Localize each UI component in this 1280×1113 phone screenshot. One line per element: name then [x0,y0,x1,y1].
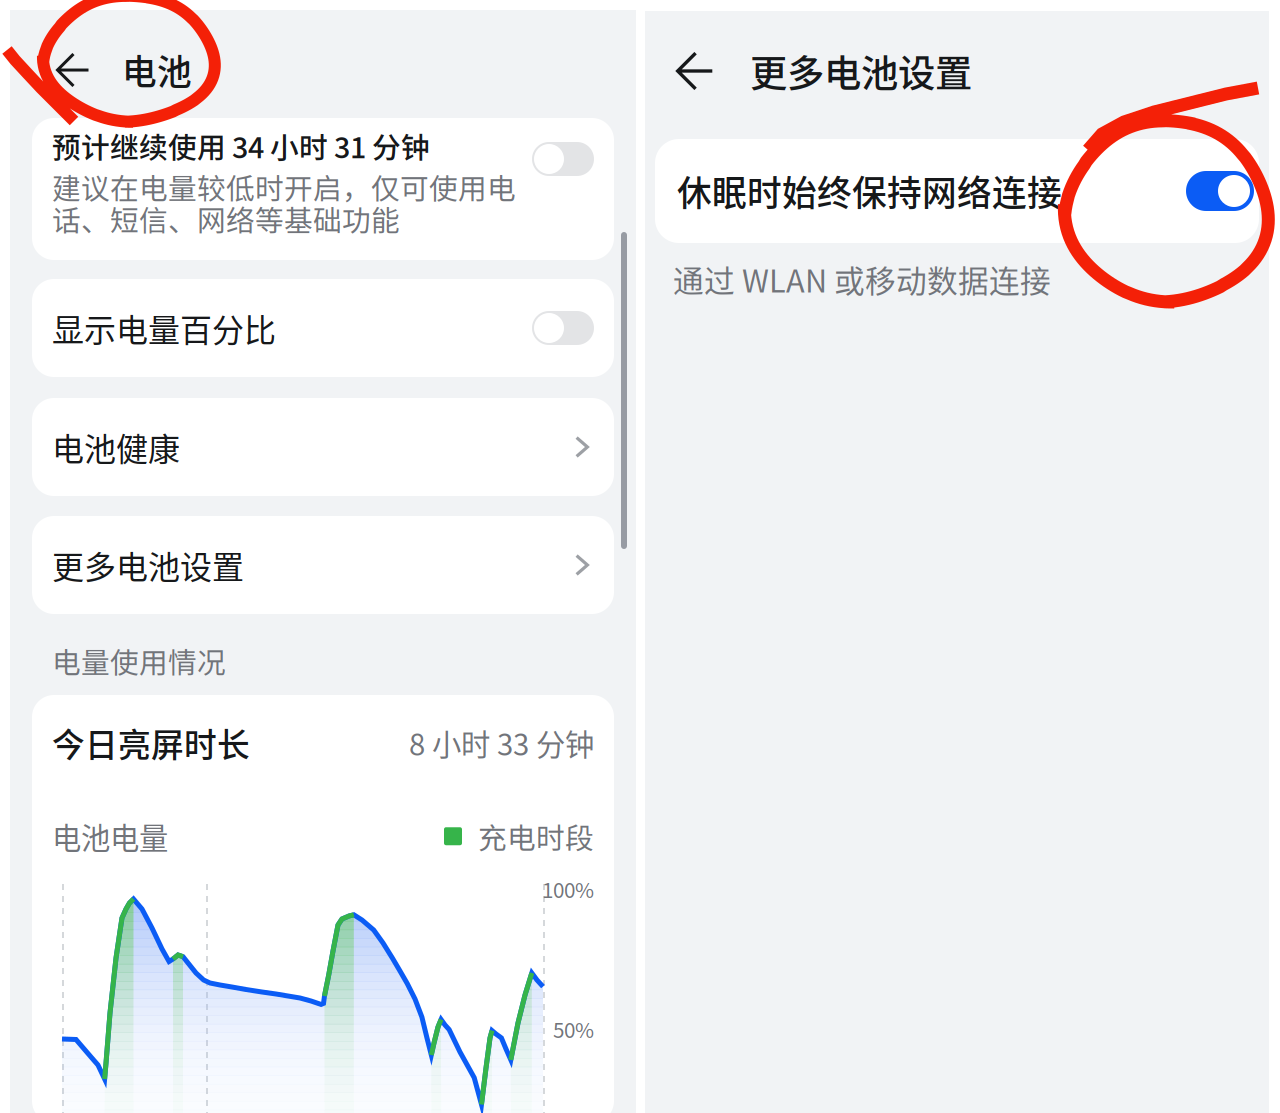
staticText: 预计继续使用 34 小时 31 分钟 [52,125,430,166]
staticText: 话、短信、网络等基础功能 [52,198,400,239]
staticText: 显示电量百分比 [52,305,276,351]
button[interactable]: 电池 [10,32,636,108]
staticText: 电池 [122,45,192,95]
staticText: 50% [553,1014,594,1044]
staticText: 今日亮屏时长 [52,719,250,766]
button[interactable]: 休眠时始终保持网络连接 [655,139,1259,243]
button[interactable]: 更多电池设置 [32,516,614,614]
button[interactable]: 电池健康 [32,398,614,496]
staticText: 电池健康 [52,424,180,470]
staticText: 通过 WLAN 或移动数据连接 [673,257,1051,301]
staticText: 更多电池设置 [52,542,244,588]
staticText: 充电时段 [478,815,594,857]
staticText: 更多电池设置 [750,44,972,98]
button[interactable]: 预计继续使用 34 小时 31 分钟 [32,118,614,260]
staticText: 建议在电量较低时开启，仅可使用电 [52,166,516,207]
button[interactable]: 更多电池设置 [645,31,1269,111]
staticText: 100% [542,874,594,904]
staticText: 电量使用情况 [52,640,226,681]
button[interactable]: 显示电量百分比 [32,279,614,377]
staticText: 8 小时 33 分钟 [409,721,594,764]
staticText: 休眠时始终保持网络连接 [677,166,1062,216]
staticText: 电池电量 [52,815,168,857]
